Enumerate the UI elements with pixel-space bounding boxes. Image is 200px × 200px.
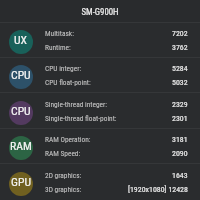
staticText: CPU float-point: <box>45 78 91 87</box>
staticText: Single-thread float-point: <box>45 114 117 123</box>
other: CPU benchmark score <box>9 101 33 125</box>
other: CPU benchmark score <box>9 65 33 89</box>
staticText: Runtime: <box>45 43 71 52</box>
staticText: 2301 <box>172 114 188 123</box>
staticText: SM-G900H <box>81 7 119 17</box>
staticText: 3181 <box>172 135 188 144</box>
staticText: GPU <box>11 175 31 189</box>
staticText: 2090 <box>172 149 188 158</box>
staticText: RAM Speed: <box>45 149 81 158</box>
button[interactable]: UX benchmark score <box>0 23 200 58</box>
button[interactable]: CPU benchmark score <box>0 94 200 129</box>
button[interactable]: CPU benchmark score <box>0 58 200 93</box>
staticText: CPU <box>11 68 31 82</box>
button[interactable]: SM-G900H <box>0 0 200 23</box>
staticText: 2329 <box>172 100 188 109</box>
staticText: 2D graphics: <box>45 171 82 180</box>
staticText: UX <box>14 33 28 47</box>
staticText: CPU integer: <box>45 64 82 73</box>
staticText: 3D graphics: <box>45 185 82 194</box>
other: UX benchmark score <box>9 30 33 54</box>
staticText: 7202 <box>172 29 188 38</box>
staticText: RAM Operation: <box>45 135 91 144</box>
staticText: 5284 <box>172 64 188 73</box>
staticText: 5032 <box>172 78 188 87</box>
button[interactable]: RAM benchmark score <box>0 129 200 164</box>
staticText: Single-thread integer: <box>45 100 108 109</box>
other: RAM benchmark score <box>9 136 33 160</box>
staticText: 3762 <box>172 43 188 52</box>
button[interactable]: GPU benchmark score <box>0 165 200 200</box>
staticText: [1920x1080] 12428 <box>128 185 188 194</box>
staticText: RAM <box>10 139 32 153</box>
staticText: 1643 <box>172 171 188 180</box>
staticText: Multitask: <box>45 29 74 38</box>
staticText: CPU <box>11 104 31 118</box>
other: GPU benchmark score <box>9 172 33 196</box>
